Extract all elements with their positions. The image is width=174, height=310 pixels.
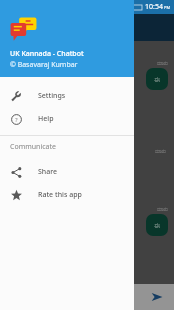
staticText: 10:54 [145, 2, 163, 12]
staticText: ಮಾತನಾಡು [13, 164, 36, 170]
staticText: Communicate [10, 142, 56, 152]
button[interactable]: ? [0, 107, 134, 130]
staticText: UK Kannada - Chatbot [10, 49, 84, 59]
staticText: ಈ [154, 222, 161, 229]
staticText: Help [38, 114, 54, 124]
staticText: ಮಾತು [155, 149, 166, 154]
staticText: Share [38, 167, 58, 177]
button[interactable]: Send [147, 287, 167, 307]
button[interactable]: Settings [0, 84, 134, 107]
staticText: ಮಾತು [157, 61, 168, 66]
staticText: PM [164, 5, 171, 10]
button[interactable]: Rate this app [0, 183, 134, 206]
staticText: ? [15, 116, 18, 124]
staticText: © Basavaraj Kumbar [10, 60, 78, 70]
button[interactable]: Share [0, 160, 134, 183]
staticText: ಈ [154, 76, 161, 83]
staticText: Rate this app [38, 190, 82, 200]
staticText: Settings [38, 91, 66, 101]
staticText: ಮಾತು [157, 207, 168, 212]
